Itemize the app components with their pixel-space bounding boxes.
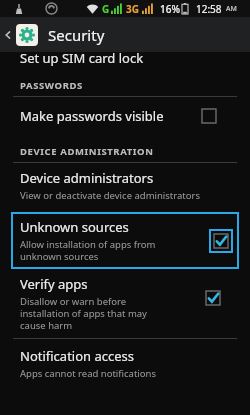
staticText: Device administrators (20, 169, 154, 187)
staticText: Set up SIM card lock (20, 49, 144, 66)
button[interactable]: Unknown sources (11, 212, 239, 269)
button[interactable]: Device administrators (0, 163, 250, 210)
staticText: Verify apps (20, 275, 88, 293)
staticText: 12:58 (196, 2, 222, 16)
staticText: View or deactivate device administrators (20, 189, 200, 202)
staticText: Allow installation of apps from unknown … (20, 238, 156, 263)
staticText: Notification access (20, 347, 135, 365)
button[interactable]: Verify apps (0, 269, 250, 338)
button[interactable]: Make passwords visible (0, 97, 250, 135)
staticText: PASSWORDS (20, 79, 83, 92)
button[interactable]: Set up SIM card lock (0, 52, 250, 69)
staticText: AM (226, 4, 237, 14)
staticText: Apps cannot read notifications (20, 367, 156, 380)
button[interactable]: Notification access (0, 339, 250, 380)
staticText: Make passwords visible (20, 107, 202, 125)
button[interactable]: Back (0, 17, 16, 52)
staticText: 16% (160, 2, 180, 16)
staticText: Unknown sources (20, 218, 129, 236)
staticText: G (102, 2, 110, 16)
staticText: 3G (126, 2, 139, 16)
staticText: Security (48, 25, 105, 45)
staticText: Disallow or warn before installation of … (20, 295, 147, 332)
staticText: DEVICE ADMINISTRATION (20, 145, 154, 158)
